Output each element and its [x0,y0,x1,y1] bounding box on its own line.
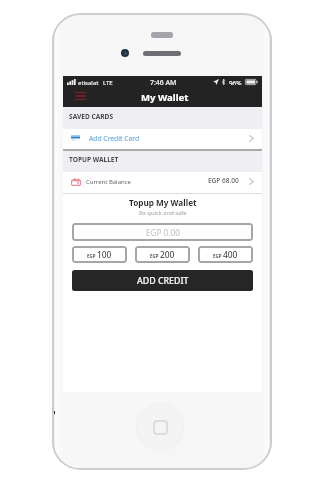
staticText: Add Credit Card [89,134,140,143]
staticText: Topup My Wallet [129,197,197,208]
button[interactable]: EGP [135,246,190,263]
button[interactable]: EGP [72,246,127,263]
staticText: EGP 68.00 [208,176,239,185]
staticText: My Wallet [141,91,189,104]
staticText: EGP [213,253,222,259]
staticText: Current Balance [86,178,131,186]
staticText: 400 [223,249,238,260]
staticText: 200 [160,249,175,260]
staticText: 100 [97,249,112,260]
staticText: EGP [150,253,159,259]
button[interactable]: Add Credit Card [63,129,262,149]
staticText: TOPUP WALLET [69,155,119,164]
button[interactable]: EGP [198,246,253,263]
button[interactable]: Menu [71,89,89,103]
staticText: LTE [103,79,113,85]
button[interactable]: Current Balance [63,172,262,193]
staticText: SAVED CARDS [69,112,114,121]
button[interactable]: EGP 0.00 [72,223,253,241]
staticText: EGP [87,253,96,259]
staticText: ADD CREDIT [137,275,189,287]
button[interactable]: ADD CREDIT [72,270,253,291]
staticText: EGP 0.00 [146,227,180,238]
staticText: 7:46 AM [150,78,177,87]
staticText: etisalat [78,79,99,85]
staticText: Its quick and safe [139,209,187,217]
staticText: 96% [229,79,242,85]
